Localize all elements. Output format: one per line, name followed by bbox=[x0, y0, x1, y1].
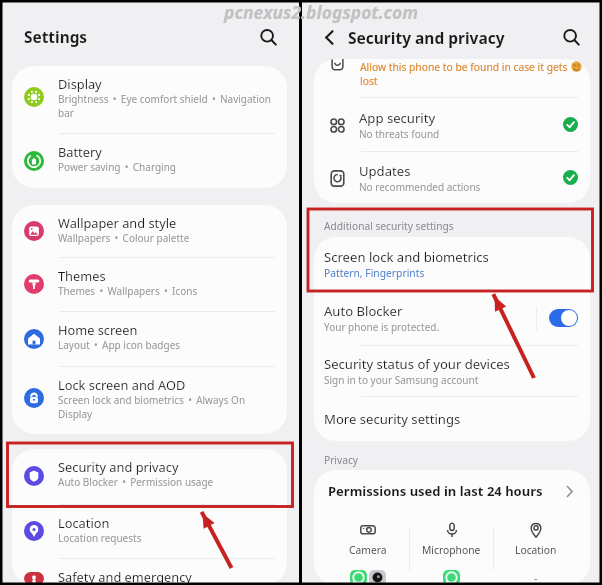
button[interactable]: Microphone bbox=[410, 512, 493, 585]
staticText: Sign in to your Samsung account bbox=[324, 373, 479, 387]
button[interactable]: Home screen bbox=[12, 312, 287, 366]
staticText: Permissions used in last 24 hours bbox=[328, 482, 543, 500]
staticText: App security bbox=[359, 109, 436, 127]
staticText: Wallpapers • Colour palette bbox=[58, 231, 190, 245]
staticText: Location requests bbox=[58, 531, 142, 545]
button[interactable]: Search bbox=[253, 22, 283, 52]
button[interactable]: More security settings bbox=[314, 397, 590, 441]
staticText: Security and privacy bbox=[348, 27, 505, 48]
staticText: Security and privacy bbox=[58, 458, 179, 475]
button[interactable]: Allow this phone to be found in case it … bbox=[314, 59, 590, 97]
staticText: pcnexus2.blogspot.com bbox=[224, 0, 419, 24]
staticText: Layout • App icon badges bbox=[58, 338, 181, 352]
button[interactable]: Back bbox=[316, 24, 342, 50]
staticText: Wallpaper and style bbox=[58, 214, 177, 231]
staticText: Home screen bbox=[58, 321, 138, 338]
button[interactable]: Wallpaper and style bbox=[12, 205, 287, 257]
staticText: Location bbox=[515, 543, 557, 557]
staticText: Auto Blocker • Permission usage bbox=[58, 475, 214, 489]
button[interactable]: Screen lock and biometrics bbox=[314, 237, 590, 291]
staticText: Lock screen and AOD bbox=[58, 376, 186, 393]
staticText: Location bbox=[58, 514, 110, 531]
button[interactable]: Security status of your devices bbox=[314, 346, 590, 396]
staticText: Settings bbox=[24, 27, 88, 48]
staticText: Camera bbox=[349, 543, 387, 557]
button[interactable]: Updates bbox=[314, 152, 590, 203]
staticText: Safety and emergency bbox=[58, 568, 192, 585]
button[interactable]: Search bbox=[556, 22, 586, 52]
staticText: Power saving • Charging bbox=[58, 160, 176, 174]
button[interactable]: Safety and emergency bbox=[12, 559, 287, 585]
button[interactable]: Lock screen and AOD bbox=[12, 367, 287, 434]
staticText: No recommended actions bbox=[359, 180, 481, 194]
button[interactable]: Themes bbox=[12, 258, 287, 311]
button[interactable]: Location bbox=[494, 512, 577, 585]
button[interactable]: Auto Blocker bbox=[314, 291, 590, 345]
staticText: Security status of your devices bbox=[324, 355, 510, 373]
staticText: Themes • Wallpapers • Icons bbox=[58, 284, 198, 298]
button[interactable]: Camera bbox=[327, 512, 409, 585]
staticText: Your phone is protected. bbox=[324, 320, 440, 334]
button[interactable]: Security and privacy bbox=[12, 449, 287, 504]
staticText: Battery bbox=[58, 143, 102, 160]
staticText: No threats found bbox=[359, 127, 440, 141]
staticText: - bbox=[534, 570, 538, 585]
staticText: More security settings bbox=[324, 410, 461, 428]
staticText: Updates bbox=[359, 162, 411, 180]
staticText: Themes bbox=[58, 267, 106, 284]
staticText: Additional security settings bbox=[324, 219, 454, 233]
button[interactable]: App security bbox=[314, 98, 590, 151]
staticText: Privacy bbox=[324, 453, 358, 467]
button[interactable]: Location bbox=[12, 505, 287, 558]
button[interactable]: Display bbox=[12, 66, 287, 133]
button[interactable]: Permissions used in last 24 hours bbox=[314, 470, 590, 512]
staticText: Display bbox=[58, 75, 102, 92]
staticText: Allow this phone to be found in case it … bbox=[360, 60, 570, 88]
staticText: Pattern, Fingerprints bbox=[324, 266, 425, 280]
staticText: Brightness • Eye comfort shield • Naviga… bbox=[58, 92, 275, 120]
staticText: Screen lock and biometrics bbox=[324, 248, 489, 266]
staticText: Microphone bbox=[422, 543, 481, 557]
staticText: Screen lock and biometrics • Always On D… bbox=[58, 393, 275, 421]
staticText: Auto Blocker bbox=[324, 302, 403, 320]
button[interactable]: Battery bbox=[12, 134, 287, 188]
button[interactable]: Auto Blocker toggle bbox=[549, 309, 578, 327]
